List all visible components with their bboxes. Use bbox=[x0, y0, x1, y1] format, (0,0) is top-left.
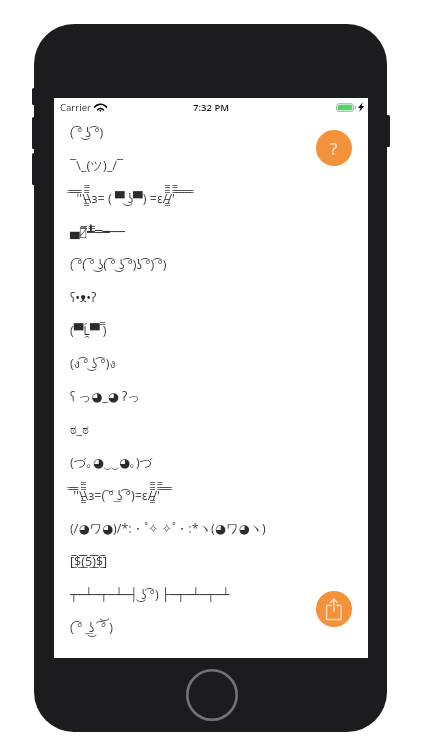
staticText: (づ｡◕‿‿◕｡)づ bbox=[70, 454, 153, 471]
staticText: (▀̿Ĺ̯▀̿ ̿) bbox=[70, 322, 107, 339]
staticText: ̿ ̿ ̿'̿'\̵͇̿̿\з= ( ▀ ͜ʖ▀) =ε/̵͇̿̿/'̿̿ ̿ … bbox=[70, 190, 192, 207]
button[interactable]: ( ͡° ͜ʖ ͡°) bbox=[54, 116, 368, 149]
button[interactable]: ( ͡°( ͡° ͜ʖ( ͡° ͜ʖ ͡°)ʖ ͡°) ͡°) bbox=[54, 248, 368, 281]
button[interactable]: (/◕ワ◕)/*:・˚✧ ✧˚・:*ヽ(◕ワ◕ヽ) bbox=[54, 512, 368, 545]
staticText: ┬─┴─┬─┴─┤ ͜ʖ ͡°) ├─┬─┴─┬─┴ bbox=[70, 586, 230, 603]
button[interactable]: ̿ ̿'̿'\̵͇̿̿\з=( ͠° ͟ʖ ͡°)=ε/̵͇̿̿/'̿̿ ̿ ̿… bbox=[54, 479, 368, 512]
button[interactable]: (づ｡◕‿‿◕｡)づ bbox=[54, 446, 368, 479]
button[interactable]: [̲̅$̲̅(̲̅5̲̅)̲̅$̲̅] bbox=[54, 545, 368, 578]
button[interactable]: ▄︻̷̿┻̿═━── bbox=[54, 215, 368, 248]
staticText: ( ͡° ͜ʖ ͡°) bbox=[70, 124, 104, 141]
button[interactable]: ಠ_ಠ bbox=[54, 413, 368, 446]
staticText: (ง ͡° ͜ʖ ͡°)ง bbox=[70, 354, 116, 374]
staticText: ( ͡° ͟͜ʖ ͡͝° ) bbox=[70, 619, 114, 636]
staticText: ̿ ̿'̿'\̵͇̿̿\з=( ͠° ͟ʖ ͡°)=ε/̵͇̿̿/'̿̿ ̿ ̿… bbox=[70, 487, 170, 504]
button[interactable]: ʕ•ᴥ•ʔ bbox=[54, 281, 368, 314]
button[interactable]: (▀̿Ĺ̯▀̿ ̿) bbox=[54, 314, 368, 347]
staticText: Carrier bbox=[60, 101, 91, 114]
staticText: ▄︻̷̿┻̿═━── bbox=[70, 224, 125, 239]
button[interactable]: ʕ っ◕_◕ ʔっ bbox=[54, 380, 368, 413]
staticText: ಠ_ಠ bbox=[70, 421, 89, 438]
staticText: ? bbox=[330, 137, 338, 160]
staticText: (/◕ワ◕)/*:・˚✧ ✧˚・:*ヽ(◕ワ◕ヽ) bbox=[70, 520, 266, 537]
staticText: [̲̅$̲̅(̲̅5̲̅)̲̅$̲̅] bbox=[70, 553, 108, 570]
button[interactable]: ̿ ̿ ̿'̿'\̵͇̿̿\з= ( ▀ ͜ʖ▀) =ε/̵͇̿̿/'̿̿ ̿ … bbox=[54, 182, 368, 215]
button[interactable]: Share bbox=[316, 591, 352, 627]
staticText: ʕ•ᴥ•ʔ bbox=[70, 289, 97, 306]
button[interactable]: ( ͡° ͟͜ʖ ͡͝° ) bbox=[54, 611, 368, 644]
button[interactable]: ¯\_(ツ)_/¯ bbox=[54, 149, 368, 182]
staticText: ( ͡°( ͡° ͜ʖ( ͡° ͜ʖ ͡°)ʖ ͡°) ͡°) bbox=[70, 256, 167, 273]
staticText: ʕ っ◕_◕ ʔっ bbox=[70, 388, 141, 405]
staticText: 7:32 PM bbox=[193, 101, 230, 114]
button[interactable]: (ง ͡° ͜ʖ ͡°)ง bbox=[54, 347, 368, 380]
staticText: ¯\_(ツ)_/¯ bbox=[70, 157, 124, 174]
button[interactable]: ┬─┴─┬─┴─┤ ͜ʖ ͡°) ├─┬─┴─┬─┴ bbox=[54, 578, 368, 611]
button[interactable]: Help bbox=[316, 130, 352, 166]
